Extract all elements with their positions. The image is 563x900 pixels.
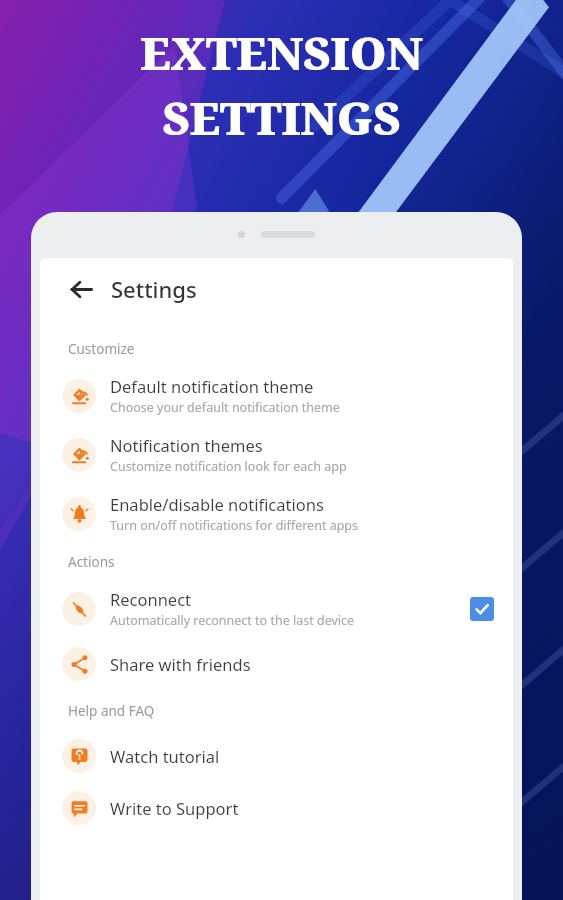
staticText: Choose your default notification theme [110,399,340,416]
staticText: Write to Support [110,797,239,819]
button[interactable]: Watch tutorial [40,730,513,782]
staticText: Reconnect [110,588,192,610]
button[interactable]: Notification themes [40,425,513,484]
staticText: EXTENSION [140,22,423,83]
staticText: Enable/disable notifications [110,493,324,515]
staticText: SETTINGS [162,87,401,148]
staticText: Settings [111,274,197,304]
button[interactable]: Reconnect checkbox [467,594,497,624]
staticText: Help and FAQ [68,702,155,720]
staticText: Actions [68,553,115,571]
staticText: Watch tutorial [110,745,220,767]
staticText: Turn on/off notifications for different … [110,517,359,534]
button[interactable]: Enable/disable notifications [40,484,513,543]
button[interactable]: Write to Support [40,782,513,834]
staticText: Share with friends [110,653,251,675]
staticText: Automatically reconnect to the last devi… [110,612,355,629]
staticText: Notification themes [110,434,263,456]
button[interactable]: Reconnect [40,579,513,638]
staticText: Customize notification look for each app [110,458,347,475]
button[interactable]: Default notification theme [40,366,513,425]
staticText: Customize [68,340,135,358]
staticText: Default notification theme [110,375,314,397]
button[interactable]: Back [64,272,98,306]
button[interactable]: Share with friends [40,638,513,690]
